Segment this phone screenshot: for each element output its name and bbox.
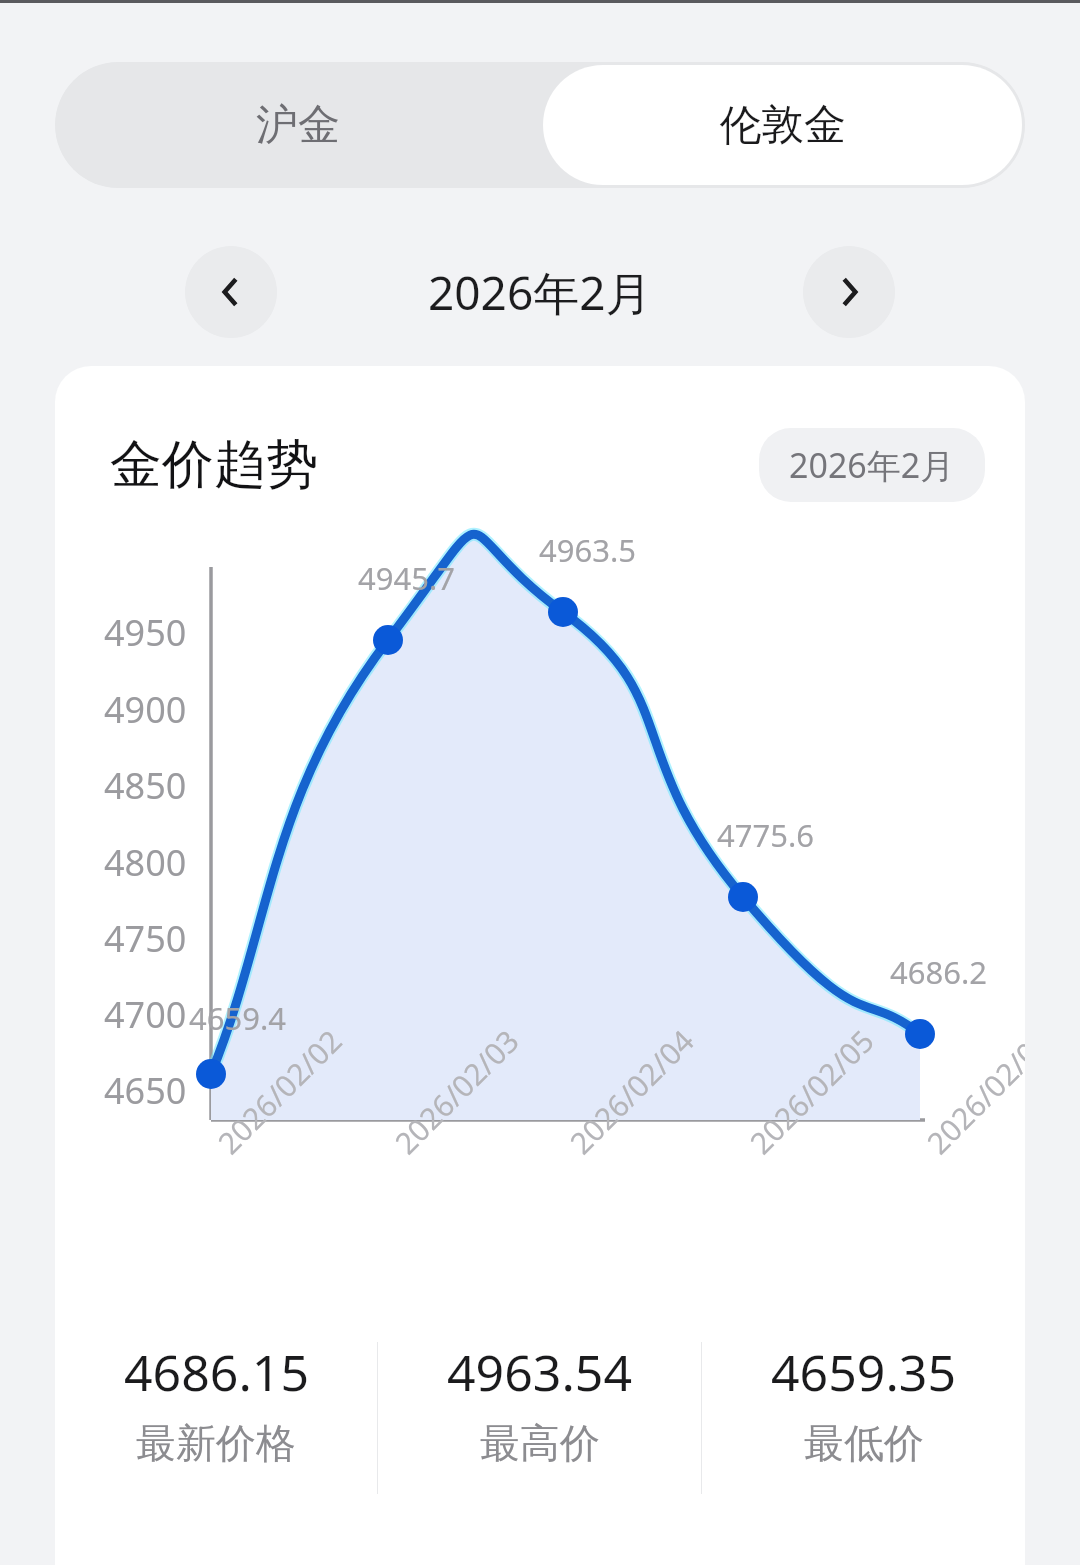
- staticText: 4963.54: [447, 1338, 632, 1406]
- staticText: 伦敦金: [720, 99, 846, 152]
- staticText: 金价趋势: [110, 432, 318, 498]
- staticText: 沪金: [256, 99, 340, 152]
- staticText: 2026年2月: [789, 442, 955, 488]
- button[interactable]: 4659.35: [702, 1338, 1025, 1498]
- button[interactable]: 4963.54: [378, 1338, 701, 1498]
- button[interactable]: 4686.15: [55, 1338, 377, 1498]
- staticText: 最新价格: [136, 1418, 296, 1468]
- staticText: 最低价: [804, 1418, 924, 1468]
- button[interactable]: 伦敦金: [543, 65, 1022, 185]
- staticText: 2026年2月: [428, 261, 652, 324]
- staticText: 最高价: [480, 1418, 600, 1468]
- button[interactable]: 沪金: [55, 62, 540, 188]
- staticText: 4659.35: [771, 1338, 956, 1406]
- button[interactable]: 2026年2月: [759, 428, 985, 502]
- button[interactable]: 上个月: [185, 246, 277, 338]
- button[interactable]: 下个月: [803, 246, 895, 338]
- staticText: 4686.15: [124, 1338, 309, 1406]
